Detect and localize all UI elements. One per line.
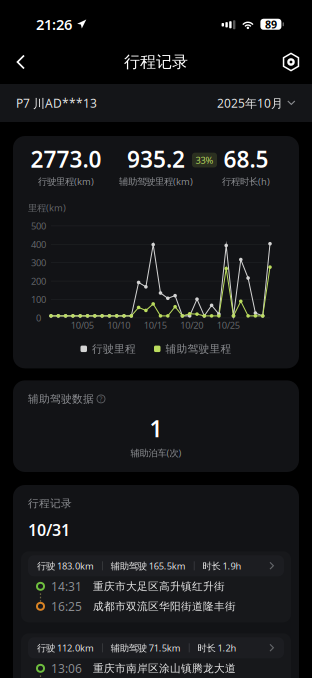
staticText: 重庆市南岸区涂山镇腾龙大道 [93, 662, 236, 675]
staticText: 行程记录 [124, 52, 188, 72]
staticText: 16:25 [51, 598, 82, 614]
staticText: 14:31 [51, 578, 82, 594]
staticText: 10/25 [217, 319, 240, 331]
staticText: P7 川AD***13 [16, 95, 97, 111]
button[interactable]: 设置 [270, 45, 312, 79]
staticText: 1 [149, 413, 162, 444]
staticText: 行驶 112.0km [37, 642, 94, 654]
staticText: 200 [31, 275, 46, 287]
staticText: 10/31 [28, 519, 70, 540]
button[interactable]: 返回 [0, 45, 42, 79]
button[interactable]: 行驶 183.0km [21, 551, 291, 622]
staticText: 辅助驾驶 165.5km [111, 560, 186, 572]
staticText: 辅助驾驶数据 [28, 392, 94, 405]
staticText: 辅助驾驶里程(km) [119, 175, 193, 187]
staticText: 10/15 [144, 319, 167, 331]
staticText: 时长 1.9h [203, 560, 242, 572]
staticText: 0 [36, 312, 41, 324]
staticText: 行驶里程 [92, 342, 136, 355]
staticText: 辅助驾驶 71.5km [111, 642, 181, 654]
staticText: 2773.0 [30, 144, 101, 174]
staticText: 行驶里程(km) [38, 175, 94, 187]
button[interactable]: 行驶 112.0km [21, 633, 291, 678]
staticText: 500 [31, 220, 46, 232]
staticText: 成都市双流区华阳街道隆丰街 [93, 600, 236, 613]
staticText: 400 [31, 238, 46, 250]
staticText: 行程记录 [28, 497, 72, 510]
staticText: 89 [265, 17, 277, 31]
staticText: 里程(km) [28, 201, 66, 214]
staticText: 10/10 [107, 319, 130, 331]
button[interactable]: 2025年10月 [217, 89, 296, 117]
staticText: 300 [31, 256, 46, 269]
staticText: 行驶 183.0km [37, 560, 94, 572]
staticText: 2025年10月 [217, 95, 283, 111]
staticText: 重庆市大足区高升镇红升街 [93, 580, 225, 593]
staticText: 21:26 [36, 14, 72, 34]
staticText: 68.5 [223, 144, 268, 174]
staticText: 行程时长(h) [222, 175, 270, 187]
staticText: 时长 1.2h [198, 642, 237, 654]
staticText: ? [99, 394, 102, 403]
staticText: 辅助驾驶里程 [165, 342, 231, 355]
staticText: 935.2 [127, 144, 185, 174]
staticText: 10/20 [180, 319, 203, 331]
staticText: 33% [195, 154, 213, 166]
staticText: 10/05 [71, 319, 94, 331]
staticText: 13:06 [51, 660, 82, 676]
staticText: 辅助泊车(次) [130, 447, 181, 459]
staticText: 100 [31, 293, 46, 306]
